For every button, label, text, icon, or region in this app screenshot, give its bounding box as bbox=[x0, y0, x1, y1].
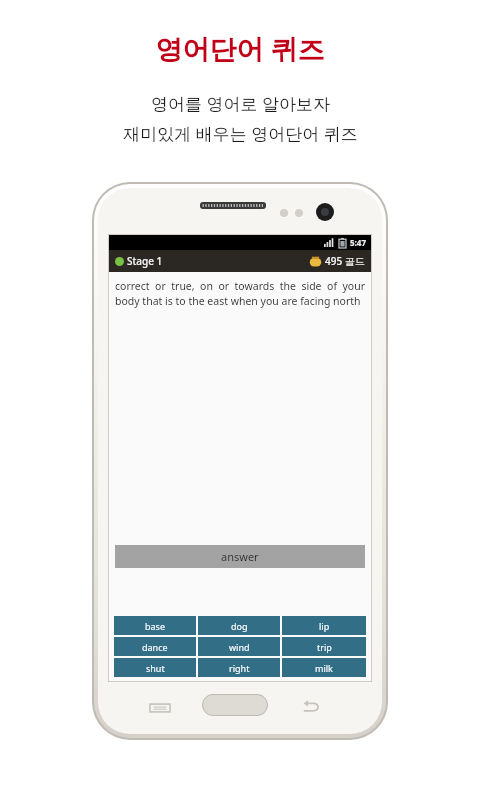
staticText: correct or true, on or towards the side … bbox=[115, 279, 365, 308]
staticText: 영어를 영어로 알아보자 bbox=[151, 92, 330, 115]
button[interactable]: milk bbox=[282, 658, 366, 677]
staticText: trip bbox=[317, 641, 332, 653]
button[interactable]: Stage 1 bbox=[109, 250, 371, 272]
staticText: milk bbox=[315, 662, 333, 674]
button[interactable]: Menu bbox=[150, 701, 170, 715]
staticText: lip bbox=[319, 620, 330, 632]
staticText: dance bbox=[142, 641, 168, 653]
staticText: right bbox=[229, 662, 250, 674]
button[interactable]: trip bbox=[282, 637, 366, 656]
button[interactable]: shut bbox=[114, 658, 196, 677]
staticText: base bbox=[145, 620, 165, 632]
button[interactable]: right bbox=[198, 658, 280, 677]
staticText: 5:47 bbox=[350, 237, 366, 248]
staticText: shut bbox=[146, 662, 165, 674]
staticText: answer bbox=[221, 549, 259, 564]
button[interactable]: wind bbox=[198, 637, 280, 656]
button[interactable]: base bbox=[114, 616, 196, 635]
button[interactable]: Back bbox=[302, 700, 320, 715]
other: Gold bbox=[309, 255, 322, 267]
button[interactable]: dog bbox=[198, 616, 280, 635]
staticText: dog bbox=[231, 620, 248, 632]
button[interactable]: lip bbox=[282, 616, 366, 635]
staticText: 영어단어 퀴즈 bbox=[155, 30, 325, 67]
staticText: wind bbox=[229, 641, 250, 653]
button[interactable]: Home bbox=[202, 694, 268, 716]
staticText: 재미있게 배우는 영어단어 퀴즈 bbox=[123, 122, 358, 145]
button[interactable]: dance bbox=[114, 637, 196, 656]
staticText: Stage 1 bbox=[127, 254, 163, 268]
button[interactable]: answer bbox=[115, 545, 365, 568]
staticText: 495 골드 bbox=[325, 254, 365, 268]
